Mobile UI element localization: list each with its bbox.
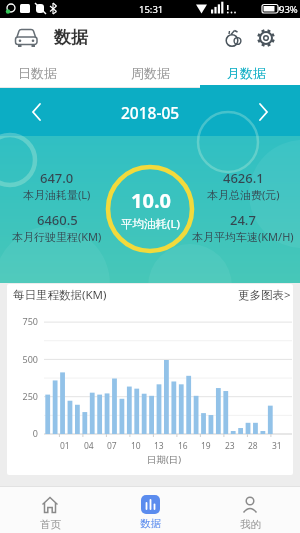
staticText: 首页 [40, 518, 61, 531]
button[interactable]: 数据 [100, 486, 200, 533]
button[interactable]: 周数据 [100, 57, 200, 88]
staticText: 0 [32, 427, 38, 439]
staticText: 28 [248, 440, 258, 452]
staticText: 本月平均车速(KM/H) [192, 229, 294, 244]
button[interactable] [12, 25, 42, 51]
staticText: 我的 [240, 518, 261, 531]
staticText: 23 [225, 440, 235, 452]
staticText: 07 [107, 440, 117, 452]
button[interactable] [254, 26, 278, 50]
staticText: 月数据 [227, 65, 266, 81]
staticText: 更多图表> [238, 287, 291, 303]
staticText: 750 [22, 315, 38, 327]
staticText: 日数据 [18, 65, 57, 81]
staticText: 10.0 [131, 187, 171, 214]
staticText: 4626.1 [223, 169, 264, 187]
button[interactable]: 我的 [200, 486, 300, 533]
staticText: 数据 [140, 517, 161, 530]
staticText: 01 [60, 440, 70, 452]
staticText: 500 [22, 353, 38, 365]
staticText: 04 [84, 440, 94, 452]
staticText: 13 [154, 440, 164, 452]
button[interactable]: 首页 [0, 486, 100, 533]
staticText: 10 [131, 440, 141, 452]
button[interactable] [222, 26, 246, 50]
staticText: 250 [22, 390, 38, 402]
button[interactable]: 月数据 [200, 57, 300, 88]
staticText: 15:31 [139, 3, 164, 16]
button[interactable]: 更多图表> [238, 287, 291, 303]
staticText: 本月行驶里程(KM) [12, 229, 102, 244]
staticText: 本月油耗量(L) [23, 187, 91, 202]
staticText: 平均油耗(L) [121, 216, 180, 232]
staticText: 647.0 [40, 169, 74, 187]
staticText: 周数据 [131, 65, 170, 81]
button[interactable] [250, 99, 276, 125]
staticText: 数据 [54, 27, 88, 48]
staticText: 31 [272, 440, 282, 452]
staticText: 19 [201, 440, 211, 452]
staticText: 16 [178, 440, 188, 452]
staticText: 24.7 [230, 211, 256, 229]
staticText: 6460.5 [37, 211, 78, 229]
staticText: 本月总油费(元) [207, 187, 280, 202]
staticText: 每日里程数据(KM) [13, 287, 107, 303]
staticText: 2018-05 [121, 102, 180, 123]
button[interactable] [24, 99, 50, 125]
button[interactable]: 日数据 [0, 57, 92, 88]
staticText: 日期(日) [147, 453, 182, 466]
staticText: 93% [279, 3, 298, 16]
